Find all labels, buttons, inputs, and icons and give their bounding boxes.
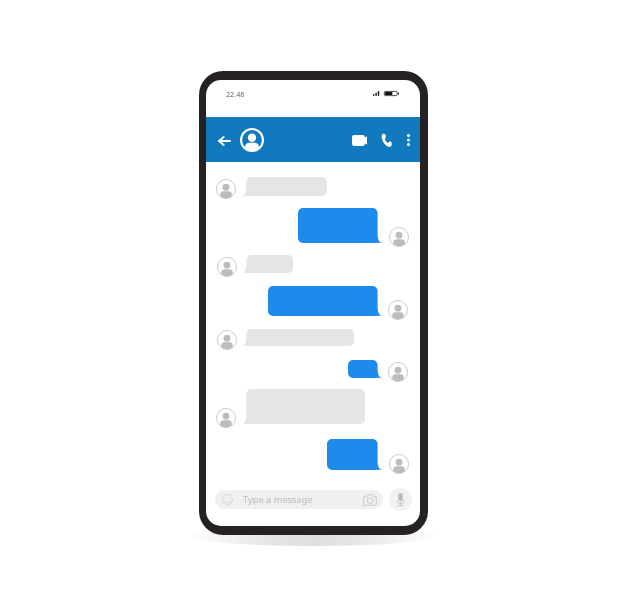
staticText: 22.48 bbox=[226, 89, 245, 99]
button[interactable]: Sender avatar bbox=[389, 227, 409, 247]
button[interactable]: Message bubble bbox=[242, 389, 365, 424]
button[interactable]: Type a message bbox=[215, 490, 383, 509]
button[interactable]: Back bbox=[213, 130, 235, 152]
button[interactable]: Message bubble bbox=[242, 329, 354, 346]
button[interactable]: Message bubble bbox=[242, 255, 293, 273]
button[interactable]: Sender avatar bbox=[388, 300, 408, 320]
button[interactable]: Message bubble bbox=[348, 360, 382, 378]
button[interactable]: Message bubble bbox=[298, 208, 382, 243]
button[interactable]: Message bubble bbox=[268, 286, 382, 316]
button[interactable]: Video call bbox=[347, 128, 371, 152]
button[interactable]: Sender avatar bbox=[389, 454, 409, 474]
button[interactable]: Message bubble bbox=[327, 439, 382, 470]
button[interactable]: Contact profile bbox=[239, 127, 265, 153]
staticText: Type a message bbox=[243, 493, 313, 506]
button[interactable]: Sender avatar bbox=[217, 330, 237, 350]
button[interactable]: Sender avatar bbox=[217, 257, 237, 277]
button[interactable]: Sender avatar bbox=[388, 362, 408, 382]
button[interactable]: Record voice message bbox=[389, 488, 412, 511]
button[interactable]: Sender avatar bbox=[216, 179, 236, 199]
button[interactable]: Message bubble bbox=[242, 177, 327, 196]
button[interactable]: Voice call bbox=[374, 128, 398, 152]
button[interactable]: Sender avatar bbox=[216, 408, 236, 428]
button[interactable]: More options bbox=[398, 130, 418, 150]
